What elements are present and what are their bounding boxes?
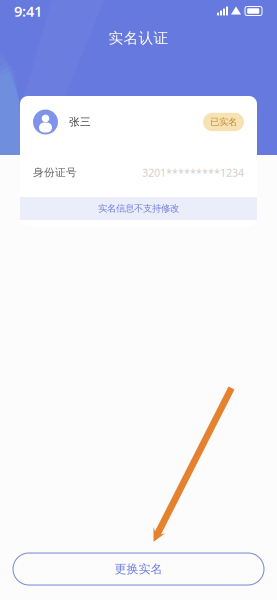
staticText: 已实名	[210, 116, 237, 128]
staticText: 实名信息不支持修改	[98, 203, 179, 214]
staticText: 身份证号	[33, 166, 77, 179]
staticText: 更换实名	[114, 562, 162, 576]
button[interactable]: 更换实名	[13, 553, 264, 585]
staticText: 3201*********1234	[142, 165, 244, 180]
staticText: 实名认证	[108, 29, 168, 47]
staticText: 张三	[69, 115, 91, 128]
staticText: 9:41	[14, 1, 42, 21]
